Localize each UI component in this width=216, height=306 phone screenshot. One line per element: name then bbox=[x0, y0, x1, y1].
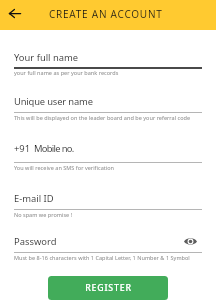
staticText: REGISTER bbox=[85, 282, 132, 294]
button[interactable]: Unique user name bbox=[14, 95, 202, 113]
staticText: Mobile no. bbox=[34, 142, 74, 155]
staticText: This will be displayed on the leader boa… bbox=[14, 114, 191, 121]
staticText: Must be 8-16 characters with 1 Capital L… bbox=[14, 254, 190, 261]
button[interactable]: +91 bbox=[14, 142, 202, 163]
staticText: E-mail ID bbox=[14, 192, 54, 205]
staticText: +91 bbox=[14, 142, 31, 155]
staticText: Unique user name bbox=[14, 95, 93, 108]
button[interactable]: Show password bbox=[181, 236, 199, 247]
staticText: CREATE AN ACCOUNT bbox=[49, 7, 163, 21]
button[interactable]: Password bbox=[14, 235, 184, 248]
staticText: Your full name bbox=[14, 51, 79, 64]
button[interactable]: E-mail ID bbox=[14, 192, 202, 210]
staticText: No spam we promise ! bbox=[14, 211, 73, 218]
staticText: your full name as per your bank records bbox=[14, 69, 119, 76]
staticText: You will receive an SMS for verification bbox=[14, 164, 115, 171]
button[interactable]: Your full name bbox=[14, 51, 202, 69]
button[interactable]: REGISTER bbox=[48, 276, 168, 300]
button[interactable]: Back bbox=[4, 2, 26, 24]
